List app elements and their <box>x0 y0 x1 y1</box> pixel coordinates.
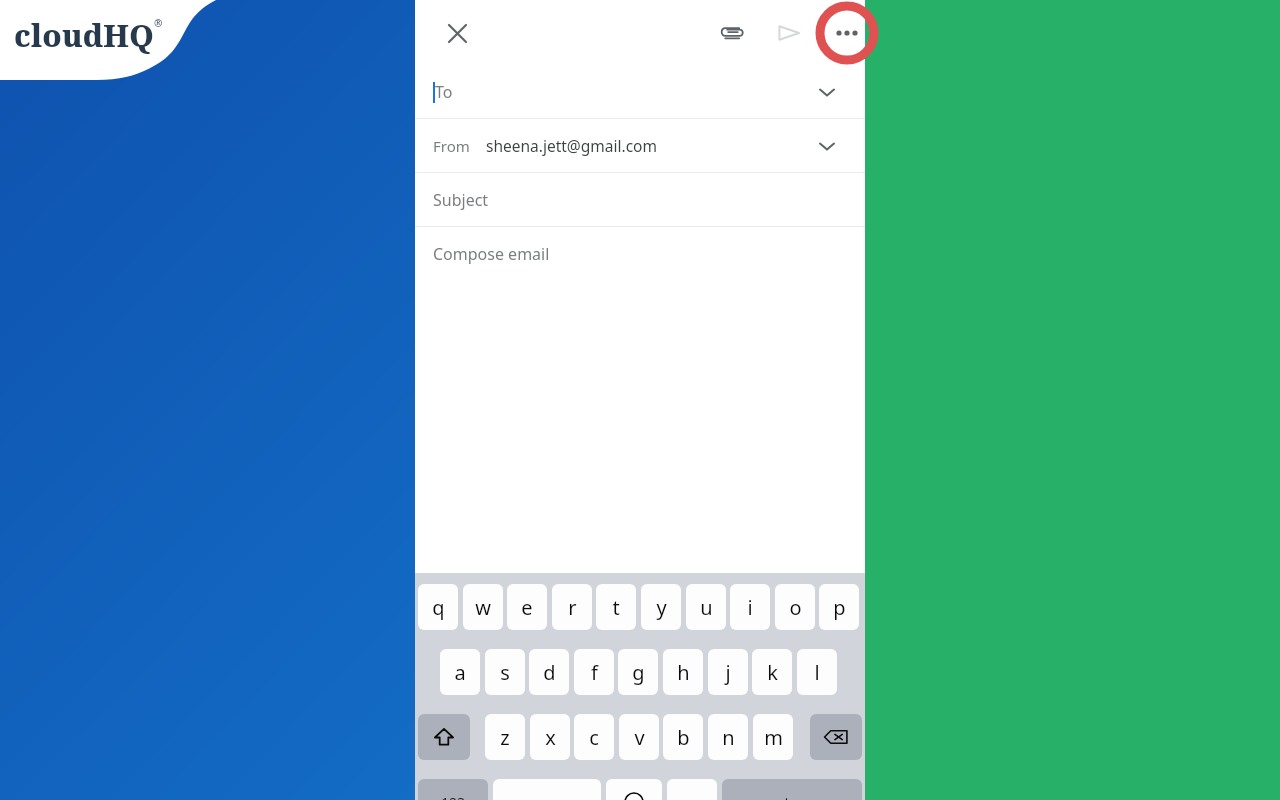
staticText: Compose email <box>433 243 550 265</box>
staticText: s <box>500 659 510 686</box>
button[interactable]: u <box>686 584 726 630</box>
button[interactable]: Expand <box>807 72 847 112</box>
button[interactable]: a <box>440 649 480 695</box>
staticText: r <box>568 594 577 621</box>
staticText: l <box>814 659 820 686</box>
button[interactable]: Attach file <box>708 9 756 57</box>
staticText: j <box>725 659 731 686</box>
button[interactable]: To <box>415 65 865 118</box>
staticText: m <box>764 724 783 751</box>
staticText: 123 <box>441 793 466 800</box>
button[interactable]: t <box>596 584 636 630</box>
button[interactable]: Send <box>765 9 813 57</box>
button[interactable]: h <box>663 649 703 695</box>
button[interactable]: Expand <box>807 126 847 166</box>
staticText: y <box>656 594 667 621</box>
button[interactable]: x <box>530 714 570 760</box>
button[interactable]: Shift <box>418 714 470 760</box>
button[interactable]: Compose email <box>415 227 865 280</box>
staticText: x <box>545 724 556 751</box>
button[interactable]: Subject <box>415 173 865 226</box>
staticText: w <box>475 594 491 621</box>
button[interactable]: r <box>552 584 592 630</box>
staticText: cloudHQ <box>14 14 154 56</box>
staticText: v <box>634 724 645 751</box>
staticText: Subject <box>433 189 489 211</box>
button[interactable]: Key <box>667 779 717 800</box>
staticText: z <box>500 724 510 751</box>
staticText: sheena.jett@gmail.com <box>486 135 657 156</box>
button[interactable]: p <box>819 584 859 630</box>
button[interactable]: b <box>663 714 703 760</box>
button[interactable]: c <box>574 714 614 760</box>
staticText: t <box>612 594 620 621</box>
button[interactable]: space <box>493 779 601 800</box>
button[interactable]: Return <box>722 779 862 800</box>
button[interactable]: o <box>775 584 815 630</box>
staticText: o <box>789 594 802 621</box>
staticText: From <box>433 136 470 156</box>
button[interactable]: w <box>463 584 503 630</box>
button[interactable]: z <box>485 714 525 760</box>
button[interactable]: g <box>618 649 658 695</box>
staticText: return <box>771 793 813 800</box>
button[interactable]: Numbers <box>418 779 488 800</box>
staticText: i <box>747 594 753 621</box>
button[interactable]: i <box>730 584 770 630</box>
staticText: f <box>591 659 598 686</box>
button[interactable]: From <box>415 119 865 172</box>
button[interactable]: s <box>485 649 525 695</box>
button[interactable]: Close <box>433 9 481 57</box>
button[interactable]: j <box>708 649 748 695</box>
button[interactable]: Backspace <box>810 714 862 760</box>
button[interactable]: y <box>641 584 681 630</box>
staticText: n <box>722 724 735 751</box>
staticText: p <box>833 594 846 621</box>
staticText: g <box>632 659 645 686</box>
button[interactable]: q <box>418 584 458 630</box>
staticText: d <box>543 659 556 686</box>
button[interactable]: More options <box>815 1 879 65</box>
staticText: b <box>677 724 690 751</box>
staticText: e <box>521 594 533 621</box>
staticText: ® <box>154 16 163 30</box>
staticText: u <box>700 594 713 621</box>
button[interactable]: n <box>708 714 748 760</box>
button[interactable]: d <box>529 649 569 695</box>
staticText: a <box>454 659 466 686</box>
button[interactable]: v <box>619 714 659 760</box>
staticText: k <box>767 659 778 686</box>
staticText: c <box>589 724 599 751</box>
button[interactable]: m <box>753 714 793 760</box>
button[interactable]: k <box>752 649 792 695</box>
button[interactable]: l <box>797 649 837 695</box>
staticText: q <box>432 594 445 621</box>
button[interactable]: Emoji <box>606 779 662 800</box>
button[interactable]: f <box>574 649 614 695</box>
staticText: To <box>435 81 453 103</box>
button[interactable]: e <box>507 584 547 630</box>
staticText: h <box>677 659 690 686</box>
